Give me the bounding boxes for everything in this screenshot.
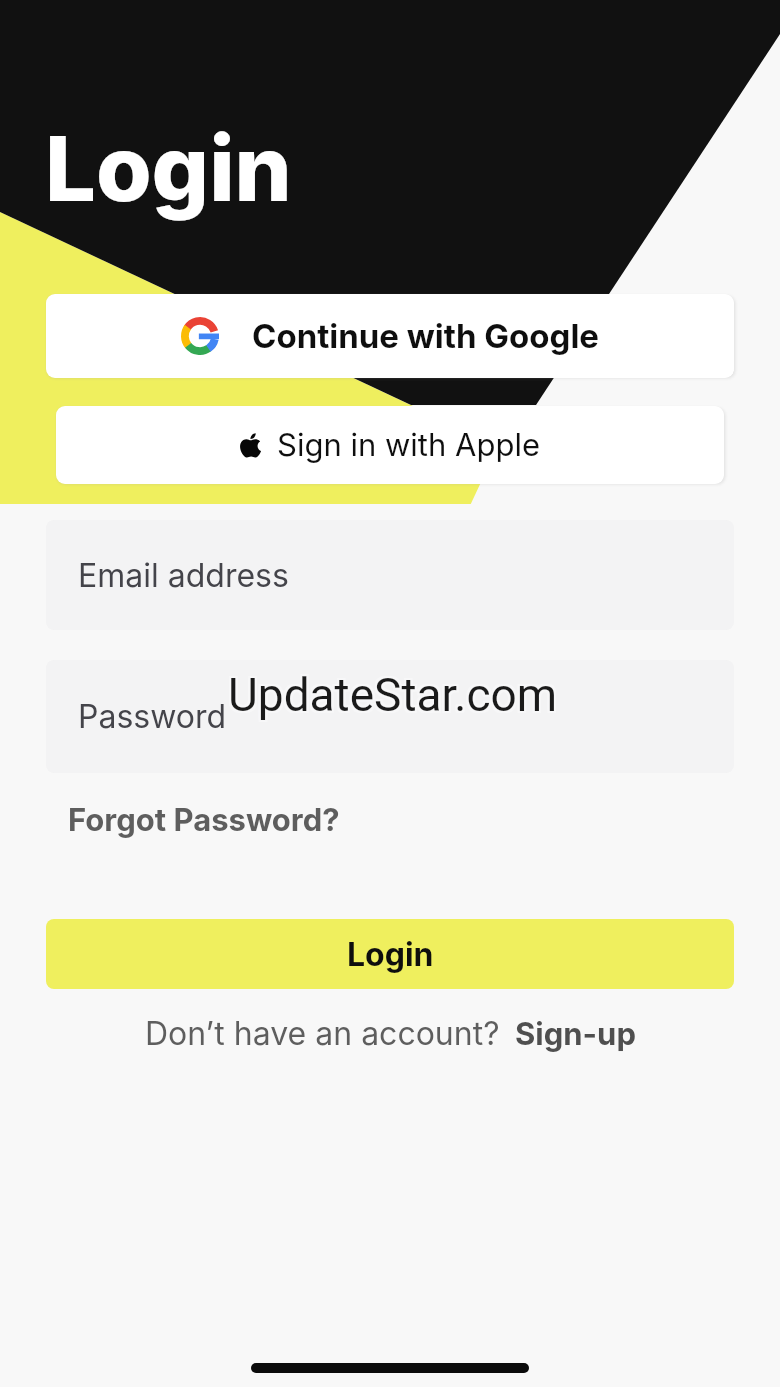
staticText: Login [45,114,292,223]
staticText: UpdateStar.com [230,666,560,720]
staticText: UpdateStar.com [226,668,556,722]
button[interactable]: Continue with Google [46,294,734,378]
staticText: Password [78,697,227,736]
button[interactable]: Password [46,660,734,773]
staticText: UpdateStar.com [228,670,558,724]
staticText: Email address [78,556,289,595]
staticText: UpdateStar.com [228,666,558,720]
staticText: UpdateStar.com [230,668,560,722]
button[interactable]: Forgot Password? [56,793,352,847]
staticText: UpdateStar.com [228,668,558,722]
staticText: UpdateStar.com [228,668,558,722]
staticText: UpdateStar.com [226,670,556,724]
staticText: Sign in with Apple [277,426,540,464]
staticText: Don’t have an account? [145,1014,500,1053]
staticText: UpdateStar.com [230,670,560,724]
button[interactable]: Login [46,919,734,989]
staticText: Continue with Google [252,316,599,356]
staticText: Sign-up [515,1015,636,1053]
button[interactable]: Email address [46,520,734,630]
button[interactable]: Sign-up [515,1015,636,1053]
button[interactable]: Sign in with Apple [56,406,724,484]
staticText: UpdateStar.com [226,666,556,720]
staticText: Forgot Password? [68,801,340,839]
staticText: Login [347,935,434,974]
